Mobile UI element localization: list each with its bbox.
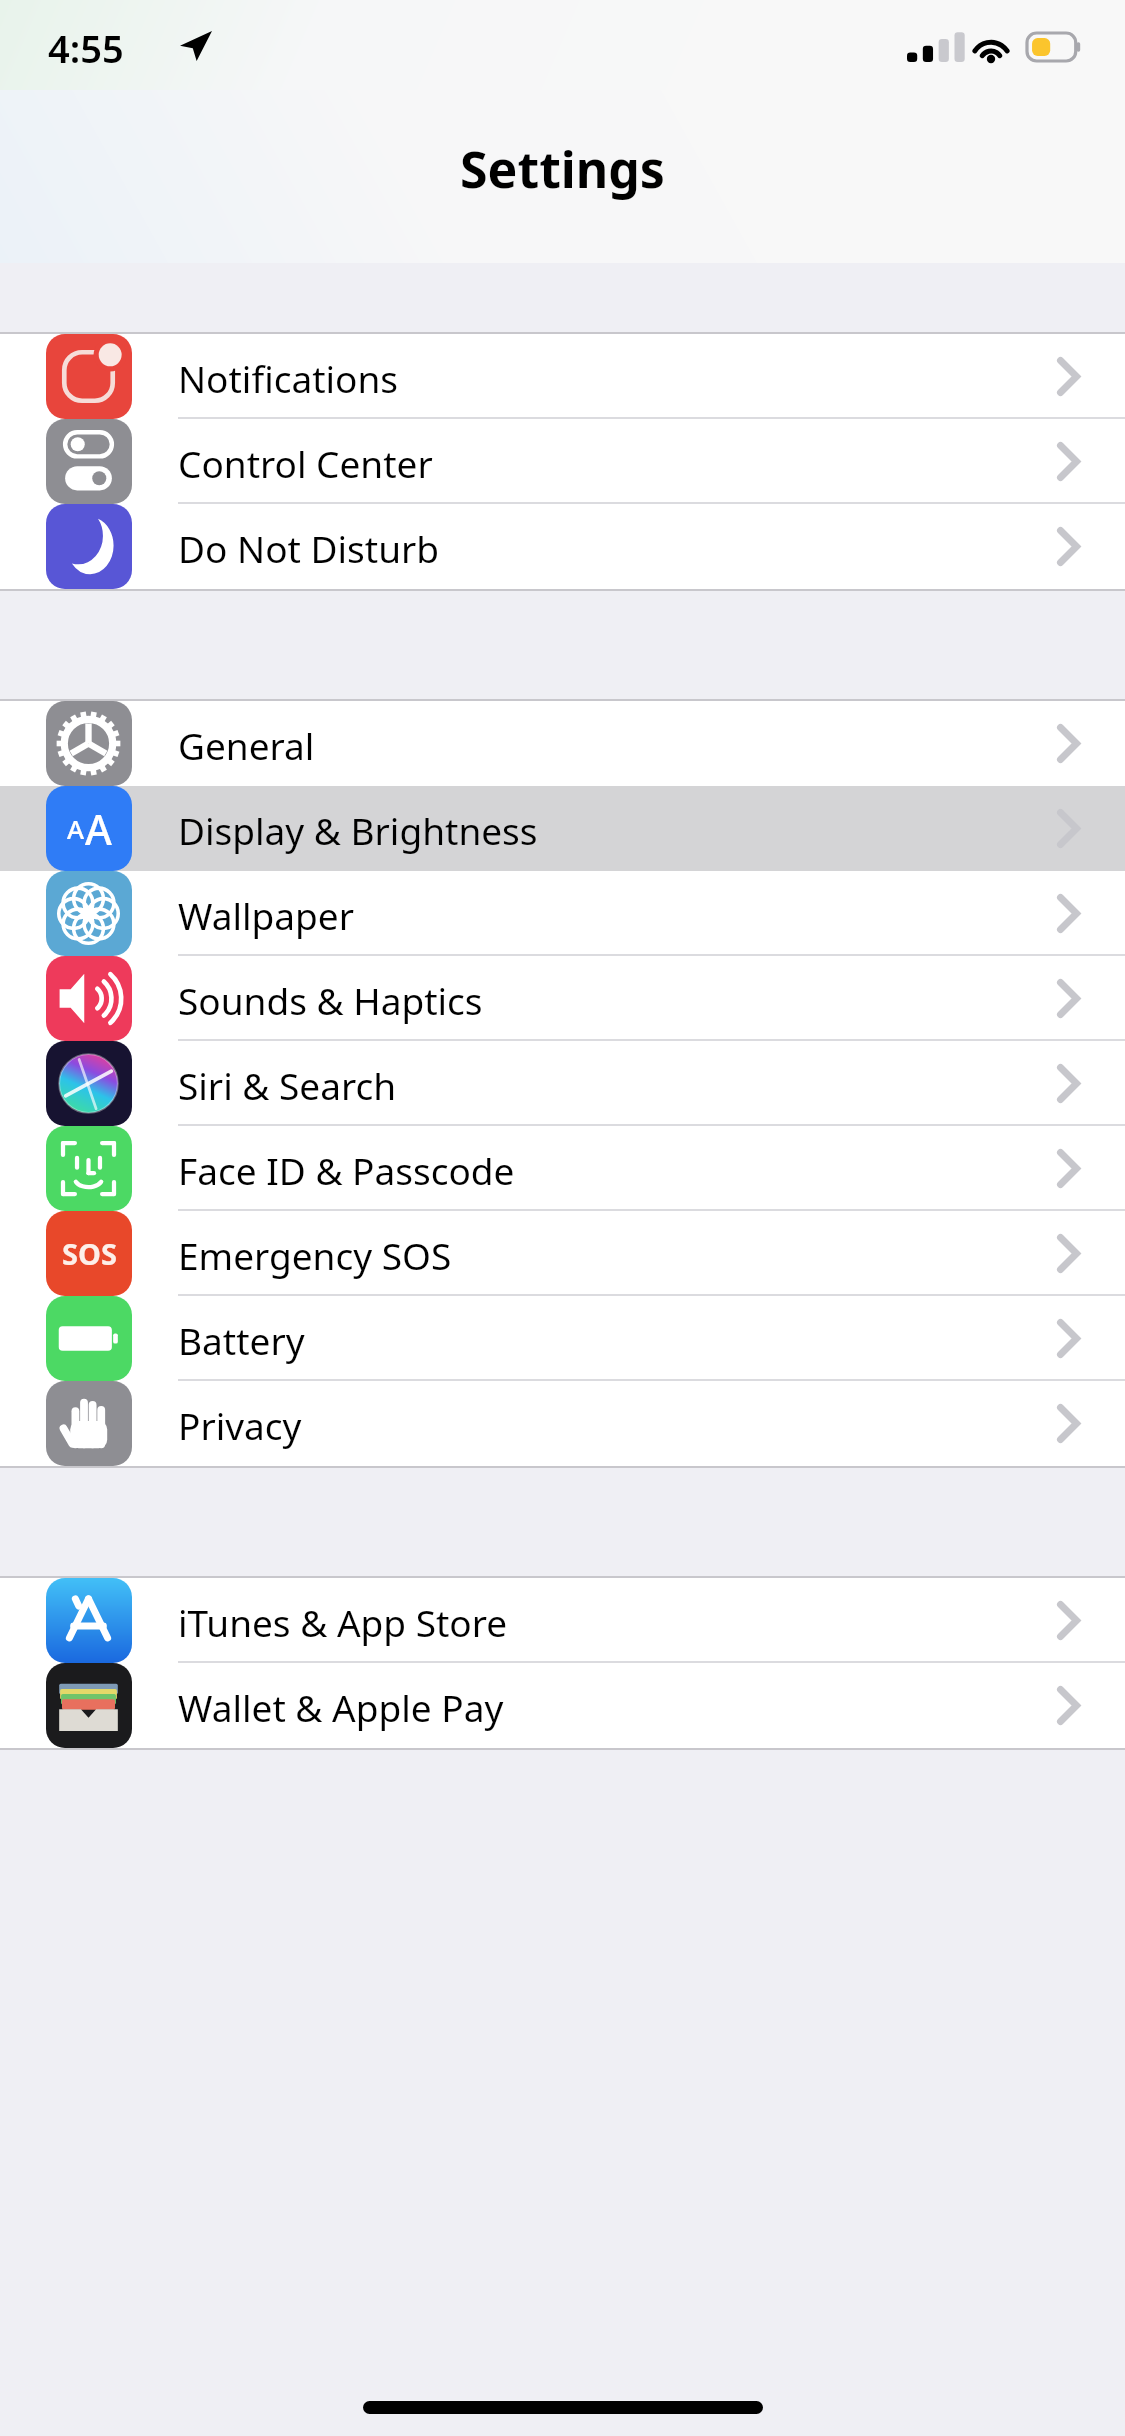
staticText: A	[67, 811, 85, 846]
staticText: Do Not Disturb	[178, 523, 440, 573]
button[interactable]: SOS	[0, 1211, 1125, 1296]
staticText: Battery	[178, 1315, 305, 1365]
button[interactable]: Privacy	[0, 1381, 1125, 1466]
staticText: Face ID & Passcode	[178, 1145, 515, 1195]
button[interactable]: iTunes & App Store	[0, 1578, 1125, 1663]
button[interactable]: Wallpaper	[0, 871, 1125, 956]
staticText: iTunes & App Store	[178, 1597, 508, 1647]
staticText: Control Center	[178, 438, 433, 488]
staticText: Siri & Search	[178, 1060, 397, 1110]
button[interactable]: Control Center	[0, 419, 1125, 504]
staticText: Sounds & Haptics	[178, 975, 483, 1025]
staticText: Privacy	[178, 1400, 302, 1450]
staticText: SOS	[62, 1234, 117, 1273]
button[interactable]: A	[0, 786, 1125, 871]
staticText: A	[85, 801, 112, 857]
button[interactable]: Sounds & Haptics	[0, 956, 1125, 1041]
staticText: Wallet & Apple Pay	[178, 1682, 504, 1732]
button[interactable]: Do Not Disturb	[0, 504, 1125, 589]
staticText: Notifications	[178, 353, 399, 403]
button[interactable]: Wallet & Apple Pay	[0, 1663, 1125, 1748]
button[interactable]: Notifications	[0, 334, 1125, 419]
staticText: General	[178, 720, 315, 770]
staticText: Display & Brightness	[178, 805, 538, 855]
staticText: 4:55	[48, 22, 124, 74]
button[interactable]: Siri & Search	[0, 1041, 1125, 1126]
staticText: Wallpaper	[178, 890, 354, 940]
button[interactable]: Battery	[0, 1296, 1125, 1381]
staticText: Emergency SOS	[178, 1230, 452, 1280]
button[interactable]: Face ID & Passcode	[0, 1126, 1125, 1211]
staticText: Settings	[460, 135, 665, 203]
button[interactable]: General	[0, 701, 1125, 786]
